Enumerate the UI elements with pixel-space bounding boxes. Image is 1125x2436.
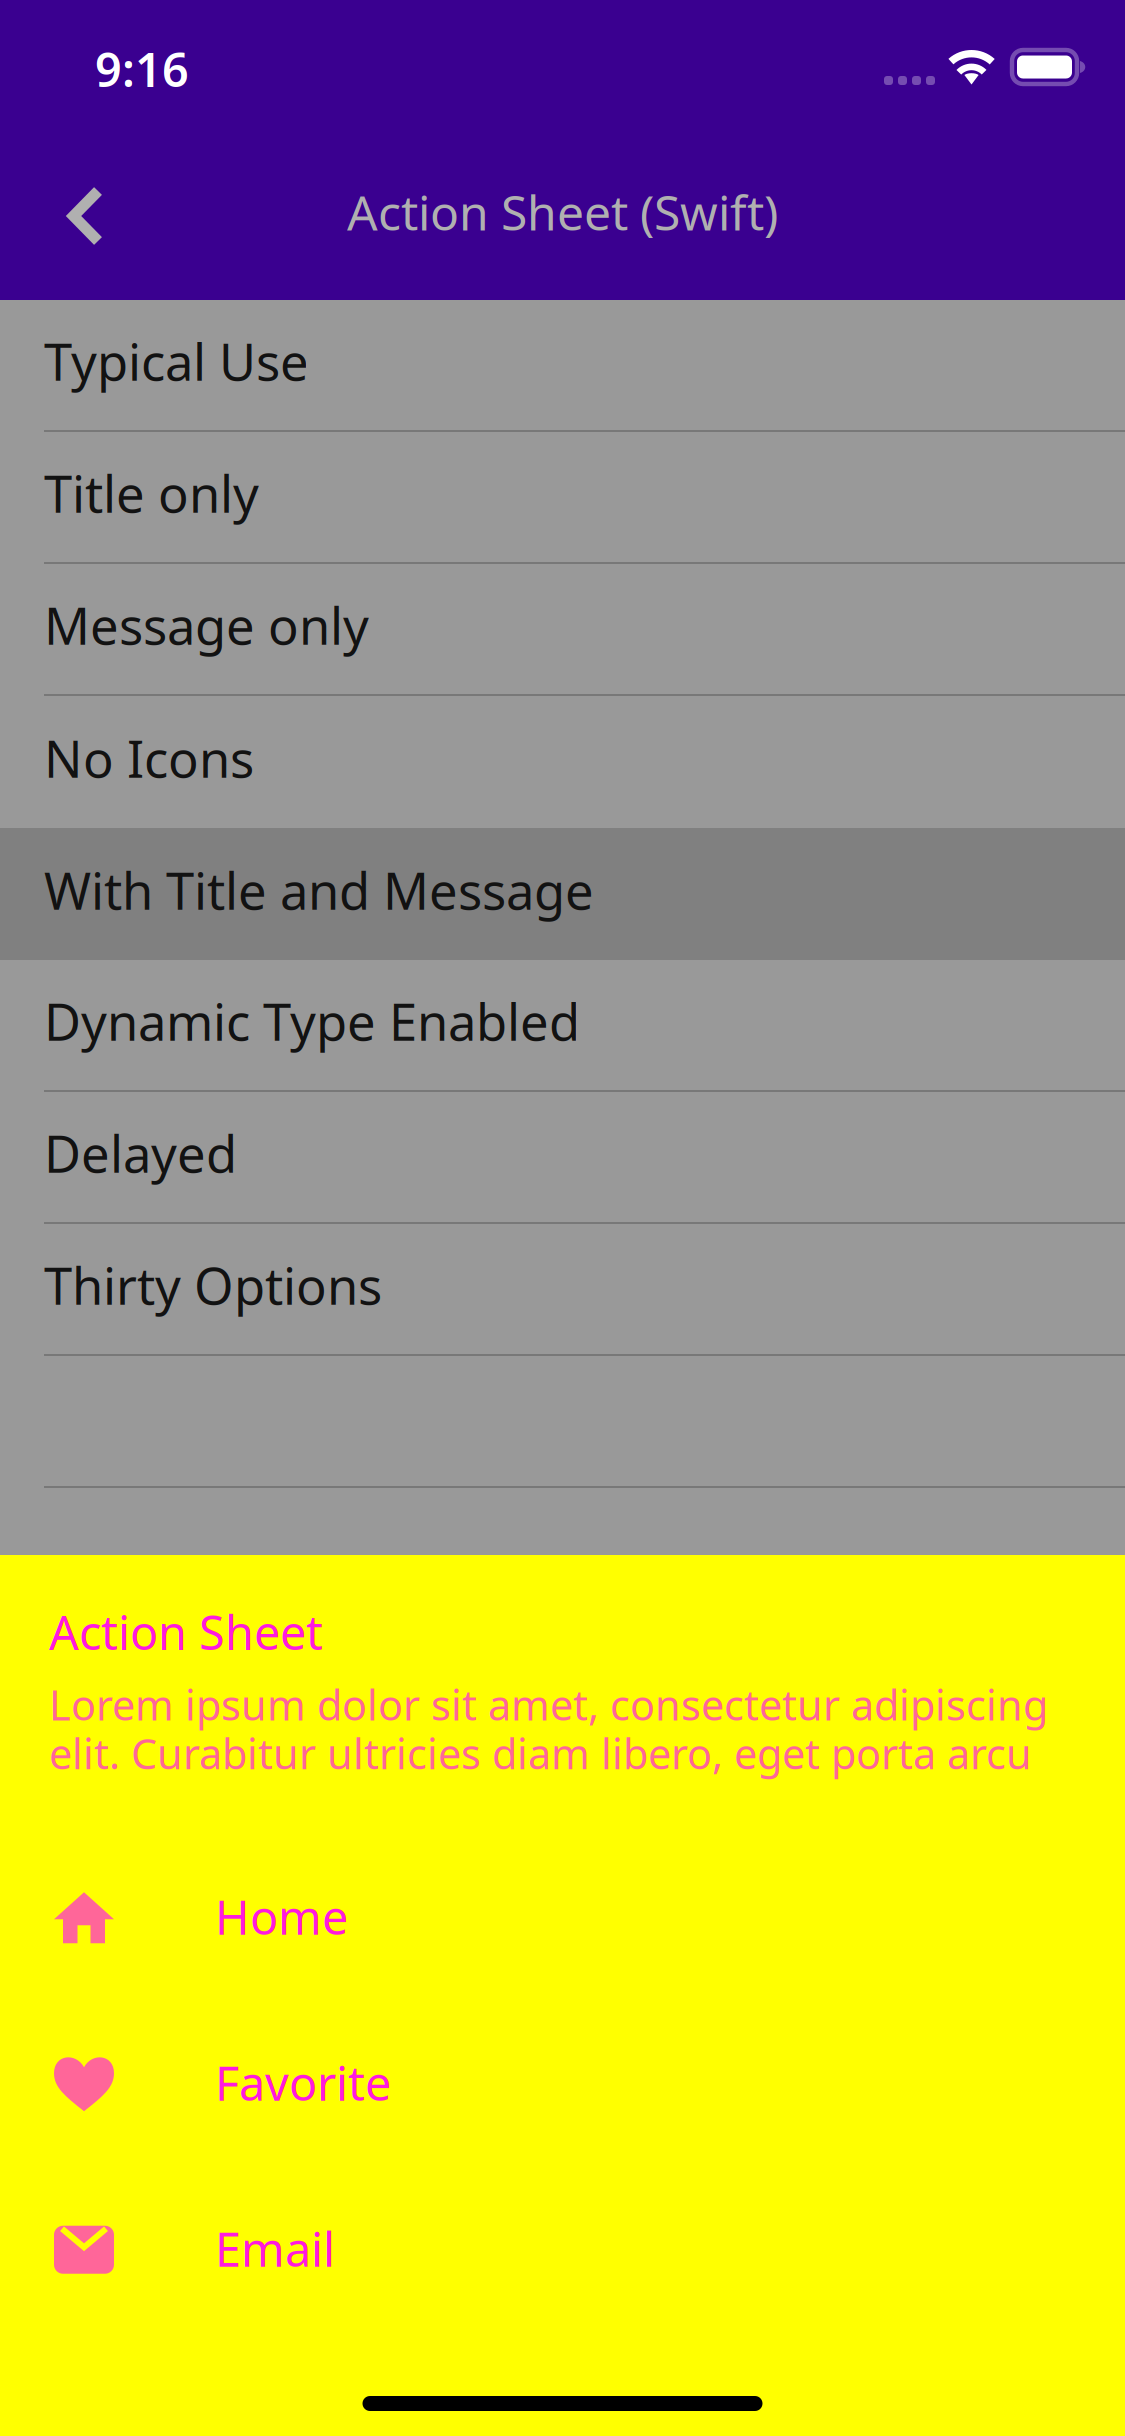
button[interactable]: Dynamic Type Enabled [0, 960, 1125, 1092]
staticText: Action Sheet (Swift) [347, 180, 778, 244]
staticText: Delayed [44, 1119, 237, 1187]
staticText: Home [215, 1886, 348, 1948]
staticText: No Icons [44, 724, 254, 792]
button[interactable]: Email [0, 2167, 1125, 2333]
staticText: Email [215, 2218, 335, 2280]
button[interactable]: No Icons [0, 696, 1125, 828]
button[interactable]: Back [0, 150, 162, 282]
button[interactable]: Delayed [0, 1092, 1125, 1224]
button[interactable]: Favorite [0, 2001, 1125, 2167]
button[interactable]: Home [0, 1835, 1125, 2001]
button[interactable]: Typical Use [0, 300, 1125, 432]
staticText: 9:16 [95, 38, 189, 100]
staticText: Dynamic Type Enabled [44, 987, 580, 1055]
staticText: Typical Use [44, 327, 309, 395]
staticText: Favorite [215, 2052, 391, 2114]
staticText: Title only [44, 459, 259, 527]
button[interactable]: Thirty Options [0, 1224, 1125, 1356]
staticText: With Title and Message [44, 856, 594, 924]
staticText: Lorem ipsum dolor sit amet, consectetur … [49, 1677, 1048, 1781]
staticText: Message only [44, 591, 369, 659]
staticText: Thirty Options [44, 1251, 382, 1319]
button[interactable]: Message only [0, 564, 1125, 696]
staticText: Action Sheet [49, 1601, 323, 1663]
button[interactable]: Title only [0, 432, 1125, 564]
button[interactable]: With Title and Message [0, 828, 1125, 960]
